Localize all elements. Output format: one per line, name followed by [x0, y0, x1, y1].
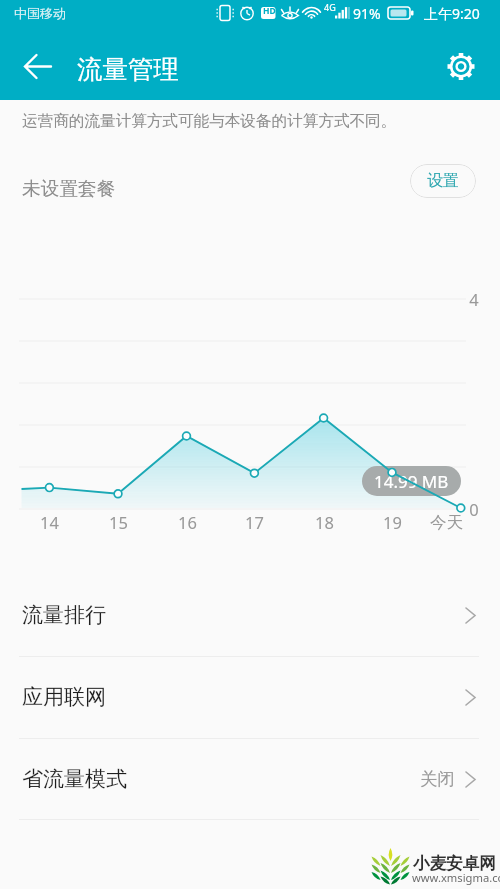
- button[interactable]: Back: [16, 44, 60, 88]
- staticText: 0: [469, 498, 479, 520]
- button[interactable]: 应用联网: [0, 656, 500, 738]
- staticText: 今天: [430, 512, 463, 533]
- staticText: 流量排行: [22, 602, 106, 628]
- staticText: 14: [40, 511, 59, 533]
- staticText: 19: [383, 511, 402, 533]
- staticText: 15: [109, 511, 128, 533]
- staticText: 流量管理: [77, 53, 179, 85]
- staticText: 上午9:20: [424, 4, 480, 23]
- button[interactable]: Settings: [439, 44, 483, 88]
- button[interactable]: 设置: [410, 164, 476, 198]
- staticText: 运营商的流量计算方式可能与本设备的计算方式不同。: [22, 111, 397, 131]
- staticText: 18: [315, 511, 334, 533]
- staticText: www.xmsigma.com: [412, 870, 500, 885]
- staticText: 未设置套餐: [22, 177, 116, 201]
- staticText: 设置: [427, 171, 459, 191]
- button[interactable]: 流量排行: [0, 574, 500, 656]
- staticText: HD: [263, 5, 276, 17]
- staticText: 14.99 MB: [374, 470, 449, 493]
- staticText: 4: [469, 288, 479, 310]
- staticText: 16: [178, 511, 197, 533]
- staticText: 省流量模式: [22, 766, 127, 792]
- staticText: 关闭: [420, 768, 455, 790]
- button[interactable]: 省流量模式: [0, 738, 500, 820]
- staticText: 91%: [353, 4, 381, 23]
- staticText: 小麦安卓网: [413, 853, 496, 874]
- staticText: 中国移动: [14, 5, 66, 21]
- staticText: 4G: [324, 1, 336, 13]
- staticText: 应用联网: [22, 684, 106, 710]
- staticText: 17: [245, 511, 264, 533]
